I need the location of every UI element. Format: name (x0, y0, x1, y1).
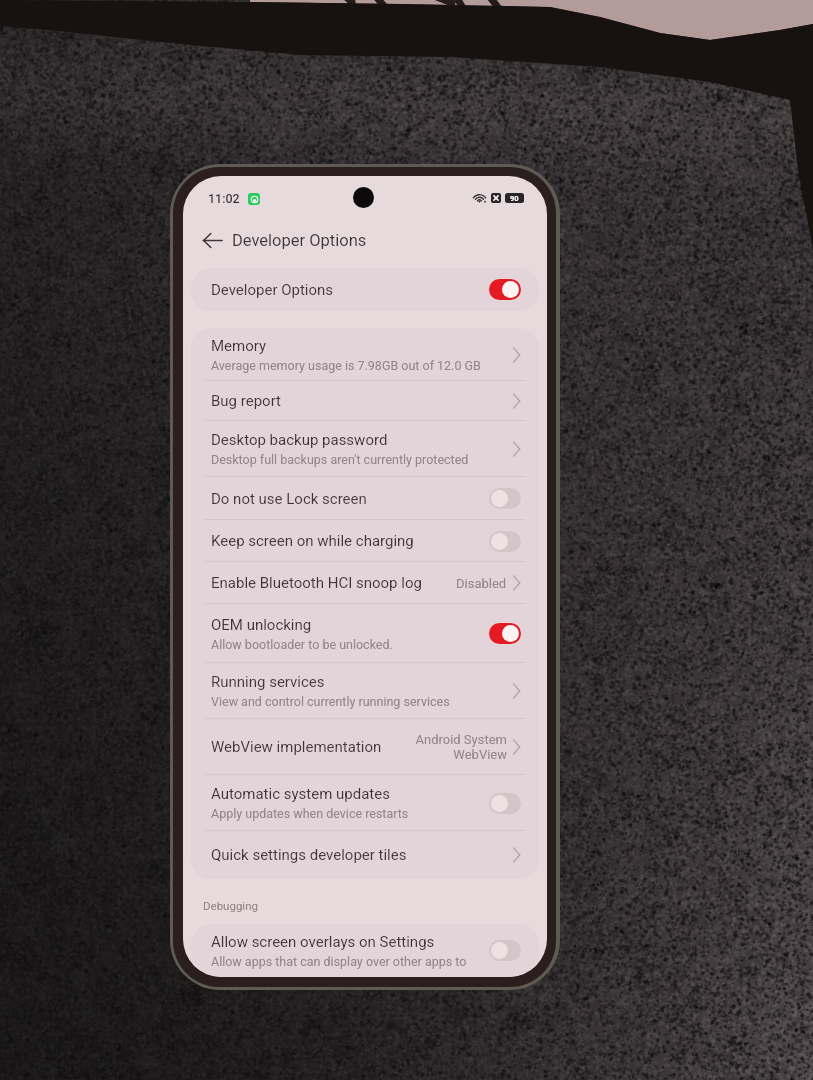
staticText: Allow screen overlays on Settings (211, 933, 435, 951)
staticText: Bug report (211, 392, 281, 410)
staticText: View and control currently running servi… (211, 694, 450, 709)
button[interactable]: Back (194, 222, 230, 258)
other: Open (512, 575, 521, 591)
staticText: Debugging (203, 899, 258, 912)
staticText: Enable Bluetooth HCI snoop log (211, 574, 422, 592)
button[interactable]: Bug report (191, 381, 539, 421)
button[interactable]: Keep screen on while charging (191, 520, 539, 562)
button[interactable]: Do not use Lock screen (191, 477, 539, 520)
staticText: Desktop full backups aren't currently pr… (211, 452, 469, 467)
staticText: Automatic system updates (211, 785, 390, 803)
other: Open (512, 739, 521, 755)
button[interactable]: Enable Bluetooth HCI snoop log (191, 562, 539, 604)
other: Open (512, 347, 521, 363)
staticText: 90 (510, 194, 519, 203)
staticText: Disabled (456, 576, 507, 591)
button[interactable]: Developer Options (191, 268, 539, 311)
staticText: 11:02 (208, 191, 240, 206)
button[interactable]: On (489, 279, 521, 300)
staticText: Running services (211, 673, 325, 691)
staticText: Memory (211, 337, 267, 355)
button[interactable]: Desktop backup password (191, 421, 539, 477)
staticText: Keep screen on while charging (211, 532, 414, 550)
staticText: Developer Options (232, 231, 367, 250)
button[interactable]: WebView implementation (191, 719, 539, 775)
staticText: Quick settings developer tiles (211, 846, 407, 864)
button[interactable]: Allow screen overlays on Settings (191, 924, 539, 977)
staticText: Do not use Lock screen (211, 490, 367, 508)
staticText: Apply updates when device restarts (211, 806, 409, 821)
button[interactable]: Memory (191, 328, 539, 381)
other: Open (512, 847, 521, 863)
staticText: Developer Options (211, 281, 334, 299)
button[interactable]: Automatic system updates (191, 775, 539, 831)
other: Open (512, 683, 521, 699)
staticText: Allow apps that can display over other a… (211, 954, 467, 969)
staticText: OEM unlocking (211, 616, 312, 634)
other: Open (512, 393, 521, 409)
button[interactable]: Running services (191, 663, 539, 719)
staticText: Desktop backup password (211, 431, 388, 449)
staticText: WebView implementation (211, 738, 382, 756)
button[interactable]: OEM unlocking (191, 604, 539, 663)
button[interactable]: Off (489, 488, 521, 509)
button[interactable]: Off (489, 793, 521, 814)
button[interactable]: On (489, 623, 521, 644)
button[interactable]: Quick settings developer tiles (191, 831, 539, 879)
staticText: Average memory usage is 7.98GB out of 12… (211, 358, 481, 373)
other: Open (512, 441, 521, 457)
button[interactable]: Off (489, 531, 521, 552)
staticText: Android System WebView (415, 732, 507, 762)
staticText: Allow bootloader to be unlocked. (211, 637, 393, 652)
button[interactable]: Off (489, 940, 521, 961)
